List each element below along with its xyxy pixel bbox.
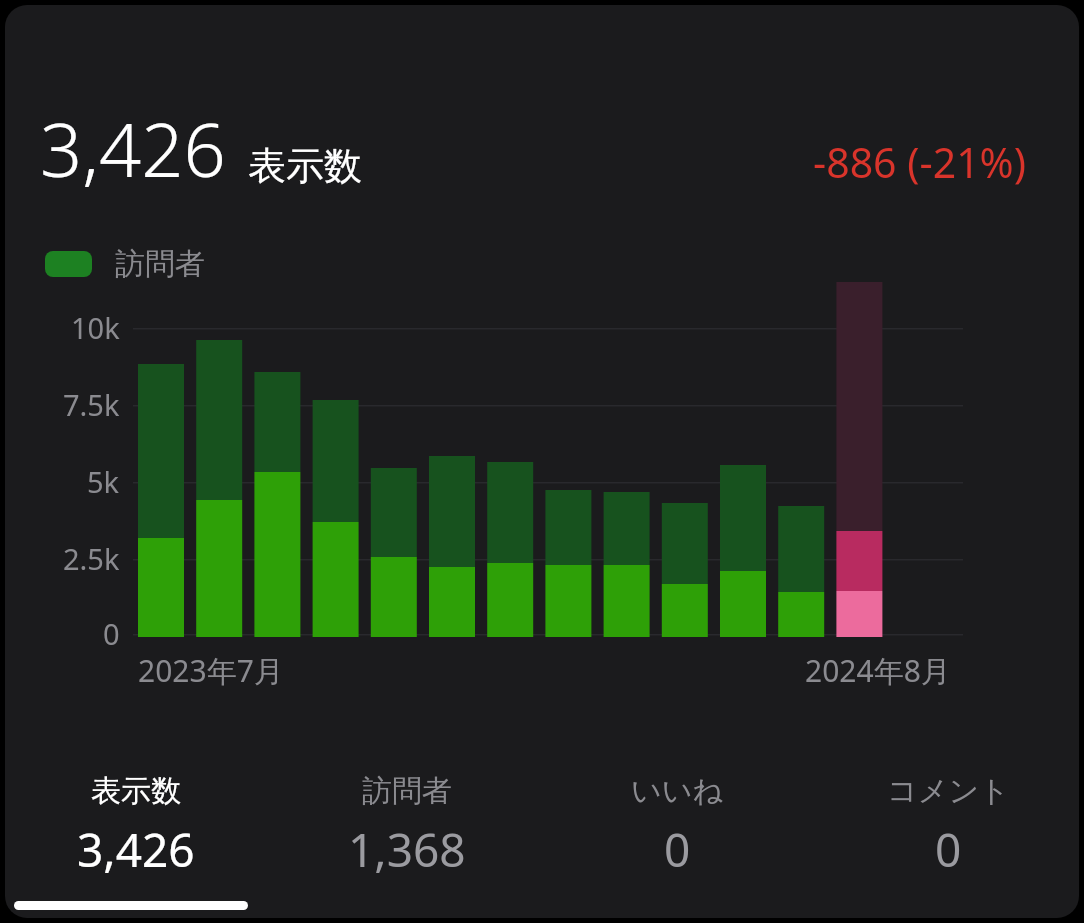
staticText: 0: [935, 818, 962, 881]
staticText: 5k: [87, 462, 120, 501]
staticText: コメント: [887, 772, 1010, 810]
staticText: 7.5k: [63, 385, 120, 424]
staticText: 表示数: [248, 142, 362, 190]
staticText: 2023年7月: [138, 650, 284, 691]
staticText: 0: [103, 614, 120, 653]
staticText: いいね: [631, 772, 724, 810]
staticText: -886 (-21%): [813, 134, 1026, 190]
staticText: 1,368: [348, 818, 466, 881]
button[interactable]: 表示数: [0, 768, 271, 885]
button[interactable]: コメント: [813, 768, 1084, 885]
staticText: 訪問者: [362, 772, 452, 810]
button[interactable]: 訪問者: [45, 245, 205, 283]
button[interactable]: 訪問者: [271, 768, 542, 885]
staticText: 3,426: [77, 818, 195, 881]
staticText: 表示数: [91, 772, 181, 810]
staticText: 2024年8月: [805, 650, 951, 691]
staticText: 訪問者: [115, 245, 205, 283]
staticText: 2.5k: [63, 539, 120, 578]
staticText: 0: [664, 818, 691, 881]
button[interactable]: いいね: [542, 768, 813, 885]
staticText: 10k: [71, 308, 120, 347]
staticText: 3,426: [40, 98, 226, 199]
